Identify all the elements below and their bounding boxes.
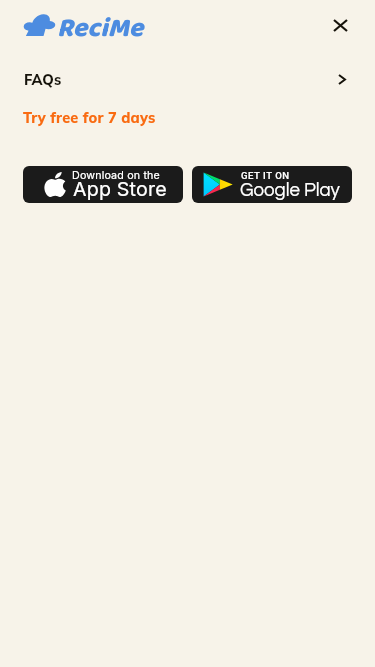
staticText: ReciMe [57, 7, 144, 49]
staticText: FAQs [24, 70, 62, 88]
staticText: GET IT ON [241, 170, 290, 181]
button[interactable]: FAQs [0, 64, 375, 94]
button[interactable]: Close [325, 10, 355, 40]
staticText: Google Play [240, 181, 340, 200]
staticText: App Store [73, 177, 167, 201]
staticText: Try free for 7 days [23, 108, 156, 126]
button[interactable]: Download on the App Store [23, 166, 183, 203]
staticText: Download on the [72, 169, 160, 182]
button[interactable]: Get it on Google Play [192, 166, 352, 203]
